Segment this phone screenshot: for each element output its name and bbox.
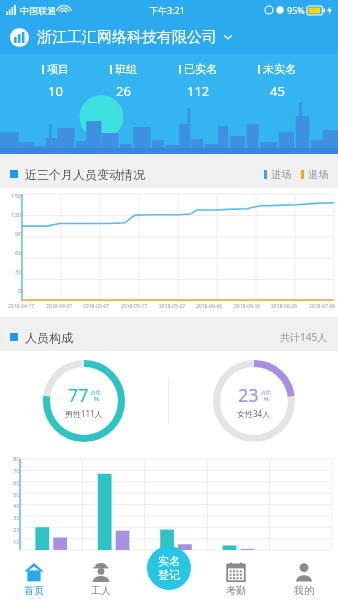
staticText: 10 [13,538,20,546]
button[interactable]: 我的 [270,552,338,600]
button[interactable]: 项目 [42,62,69,100]
staticText: 2018-06-26 [271,303,298,310]
staticText: 2018-05-17 [121,303,148,310]
staticText: 150 [11,192,22,200]
button[interactable]: 23 [213,360,295,442]
staticText: 90 [15,230,22,238]
button[interactable]: 已实名 [179,62,217,100]
staticText: 30 [13,514,20,522]
staticText: 退场 [308,168,328,181]
staticText: 近三个月人员变动情况 [25,167,145,182]
staticText: 45 [270,82,285,100]
button[interactable]: 实名 [147,546,191,590]
staticText: 下午3:21 [149,4,185,16]
staticText: 中国联通 [20,5,56,16]
staticText: 2018-04-27 [46,303,73,310]
staticText: 考勤 [226,584,246,597]
staticText: % [264,395,269,403]
staticText: 2018-07-06 [309,303,336,310]
staticText: 120 [11,211,22,219]
staticText: 95% [287,4,305,16]
other: 首页 [24,562,44,582]
staticText: 2018-06-06 [196,303,223,310]
staticText: 2018-05-07 [83,303,110,310]
staticText: 我的 [294,584,314,597]
staticText: 女性34人 [237,408,271,419]
staticText: 浙江工汇网络科技有限公司 [37,28,217,47]
staticText: 30 [15,268,22,276]
staticText: 2018-06-16 [234,303,261,310]
button[interactable]: 工人 [67,552,134,600]
staticText: 2018-04-17 [8,303,35,310]
button[interactable]: 未实名 [258,62,296,100]
staticText: 60 [15,249,22,257]
staticText: 40 [13,502,20,510]
other: 工人 [91,562,111,582]
staticText: 50 [13,491,20,499]
staticText: 未实名 [263,62,296,76]
staticText: % [94,395,99,403]
staticText: 人员构成 [25,330,73,345]
button[interactable]: 班组 [110,62,137,100]
staticText: 80 [13,455,20,463]
staticText: 70 [13,467,20,475]
staticText: 26 [116,82,131,100]
staticText: 占比 [91,389,101,395]
staticText: 男性111人 [65,408,103,419]
staticText: 占比 [261,389,271,395]
staticText: 23 [238,383,259,408]
staticText: 60 [13,479,20,487]
button[interactable]: 首页 [0,552,67,600]
staticText: 登记 [158,568,180,582]
staticText: 0 [18,287,22,295]
other: 考勤 [226,562,246,582]
staticText: 20 [13,526,20,534]
staticText: 进场 [271,168,291,181]
staticText: 工人 [91,584,111,597]
other: 我的 [294,562,314,582]
staticText: 已实名 [184,62,217,76]
staticText: 10 [48,82,63,100]
button[interactable]: 考勤 [202,552,270,600]
button[interactable]: 77 [43,360,125,442]
staticText: 2018-05-27 [159,303,186,310]
staticText: 77 [68,383,89,408]
staticText: 首页 [24,584,44,597]
staticText: 班组 [115,62,137,76]
staticText: 项目 [47,62,69,76]
button[interactable]: 浙江工汇网络科技有限公司 [0,20,338,54]
staticText: 实名 [158,554,180,568]
staticText: 112 [187,82,210,100]
staticText: 共计145人 [280,330,328,344]
